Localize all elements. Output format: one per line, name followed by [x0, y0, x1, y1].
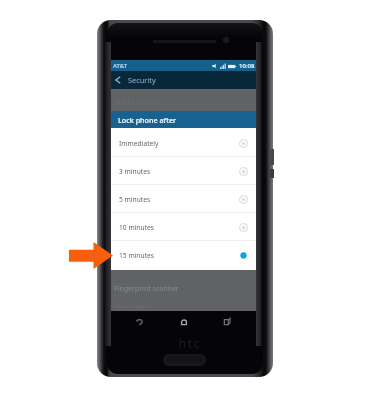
button[interactable]: Home	[178, 316, 190, 328]
button[interactable]: 5 minutes	[111, 185, 256, 213]
staticText: 5 minutes	[119, 195, 151, 204]
button[interactable]: Recent apps	[221, 316, 233, 328]
staticText: 10:08	[239, 62, 255, 70]
staticText: 10 minutes	[119, 223, 155, 232]
staticText: Fingerprint scanner	[114, 284, 179, 294]
staticText: Security	[128, 75, 156, 85]
button[interactable]: Back	[134, 316, 146, 328]
button[interactable]: 10 minutes	[111, 213, 256, 241]
staticText: 15 minutes	[119, 251, 155, 260]
button[interactable]: 3 minutes	[111, 157, 256, 185]
staticText: htc	[165, 335, 215, 351]
staticText: Lock phone after	[118, 115, 177, 125]
staticText: AT&T	[113, 62, 128, 70]
staticText: 3 minutes	[119, 167, 151, 176]
button[interactable]: Immediately	[111, 129, 256, 157]
staticText: Immediately	[119, 139, 159, 148]
button[interactable]: 15 minutes	[111, 241, 256, 269]
